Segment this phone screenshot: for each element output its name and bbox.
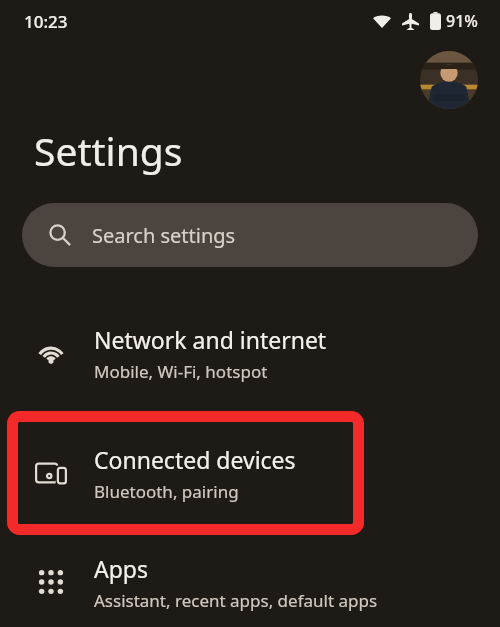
staticText: Settings <box>34 124 183 177</box>
staticText: Mobile, Wi-Fi, hotspot <box>94 360 268 383</box>
staticText: Assistant, recent apps, default apps <box>94 589 378 612</box>
button[interactable]: Connected devices <box>0 417 500 529</box>
button[interactable]: Network and internet <box>0 297 500 409</box>
staticText: Bluetooth, pairing <box>94 480 239 503</box>
button[interactable]: Account profile <box>420 51 478 109</box>
staticText: Connected devices <box>94 444 296 475</box>
button[interactable]: Apps <box>0 537 500 627</box>
button[interactable]: Search settings <box>22 203 478 267</box>
staticText: 91% <box>446 10 478 32</box>
staticText: 10:23 <box>24 10 68 33</box>
staticText: Search settings <box>92 222 236 249</box>
staticText: Apps <box>94 553 149 584</box>
staticText: Network and internet <box>94 324 327 355</box>
